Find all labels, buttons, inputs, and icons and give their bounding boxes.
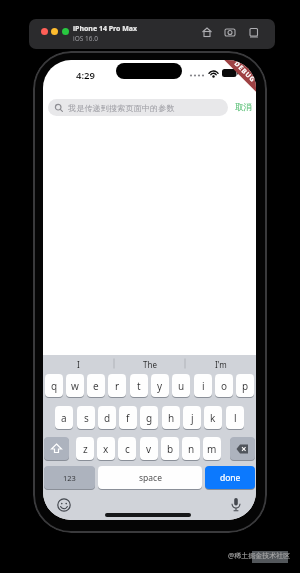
button[interactable]: b xyxy=(161,437,179,460)
staticText: I'm xyxy=(215,359,227,370)
button[interactable]: e xyxy=(87,374,105,397)
button[interactable]: I'm xyxy=(196,357,246,371)
staticText: l xyxy=(234,411,237,425)
button[interactable]: u xyxy=(172,374,190,397)
button[interactable]: 我是传递到搜索页面中的参数 xyxy=(48,99,228,116)
button[interactable] xyxy=(224,26,236,38)
button[interactable]: The xyxy=(125,357,175,371)
staticText: 取消 xyxy=(235,102,252,113)
staticText: o xyxy=(221,379,228,393)
staticText: 我是传递到搜索页面中的参数 xyxy=(68,103,175,113)
staticText: x xyxy=(103,442,109,456)
button[interactable]: 取消 xyxy=(232,99,255,116)
staticText: n xyxy=(188,442,195,456)
staticText: y xyxy=(157,379,163,393)
staticText: r xyxy=(115,379,120,393)
button[interactable] xyxy=(51,28,58,35)
staticText: iOS 16.0 xyxy=(73,34,98,43)
staticText: h xyxy=(168,411,175,425)
staticText: iPhone 14 Pro Max xyxy=(73,24,138,34)
button[interactable]: p xyxy=(236,374,254,397)
button[interactable]: z xyxy=(76,437,94,460)
staticText: 123 xyxy=(63,473,76,483)
staticText: space xyxy=(139,472,162,484)
staticText: i xyxy=(202,379,205,393)
button[interactable]: k xyxy=(204,406,222,429)
button[interactable] xyxy=(44,437,69,460)
button[interactable] xyxy=(230,437,255,460)
button[interactable]: n xyxy=(182,437,200,460)
staticText: g xyxy=(146,411,153,425)
staticText: I xyxy=(77,359,80,370)
button[interactable] xyxy=(248,26,260,38)
button[interactable]: a xyxy=(55,406,73,429)
staticText: q xyxy=(51,379,58,393)
staticText: c xyxy=(125,442,130,456)
staticText: e xyxy=(93,379,99,393)
button[interactable]: space xyxy=(98,466,202,489)
staticText: @稀土掘金技术社区 xyxy=(228,551,291,561)
staticText: 4:29 xyxy=(76,69,95,82)
staticText: v xyxy=(146,442,152,456)
button[interactable]: s xyxy=(77,406,95,429)
staticText: f xyxy=(126,411,130,425)
staticText: m xyxy=(207,442,217,456)
button[interactable]: f xyxy=(119,406,137,429)
button[interactable]: 123 xyxy=(44,466,95,489)
button[interactable]: j xyxy=(183,406,201,429)
staticText: p xyxy=(242,379,249,393)
button[interactable]: o xyxy=(215,374,233,397)
button[interactable]: l xyxy=(226,406,244,429)
button[interactable]: done xyxy=(205,466,255,489)
staticText: j xyxy=(191,411,194,425)
button[interactable]: t xyxy=(130,374,148,397)
button[interactable] xyxy=(41,28,48,35)
button[interactable]: i xyxy=(194,374,212,397)
staticText: z xyxy=(83,442,88,456)
button[interactable]: c xyxy=(118,437,136,460)
staticText: The xyxy=(143,359,157,370)
staticText: a xyxy=(61,411,67,425)
staticText: b xyxy=(167,442,174,456)
staticText: k xyxy=(210,411,216,425)
button[interactable]: d xyxy=(98,406,116,429)
button[interactable]: y xyxy=(151,374,169,397)
button[interactable]: g xyxy=(140,406,158,429)
staticText: s xyxy=(84,411,89,425)
button[interactable]: h xyxy=(162,406,180,429)
button[interactable] xyxy=(62,28,69,35)
staticText: t xyxy=(137,379,141,393)
button[interactable]: m xyxy=(203,437,221,460)
staticText: w xyxy=(71,379,79,393)
staticText: done xyxy=(220,472,241,484)
button[interactable]: r xyxy=(108,374,126,397)
button[interactable]: w xyxy=(66,374,84,397)
button[interactable]: x xyxy=(97,437,115,460)
button[interactable]: I xyxy=(53,357,103,371)
button[interactable]: q xyxy=(45,374,63,397)
staticText: DEBUG xyxy=(233,60,256,85)
button[interactable] xyxy=(57,498,71,512)
button[interactable] xyxy=(201,26,213,38)
button[interactable]: v xyxy=(140,437,158,460)
staticText: u xyxy=(178,379,185,393)
button[interactable] xyxy=(229,497,243,513)
staticText: d xyxy=(104,411,111,425)
